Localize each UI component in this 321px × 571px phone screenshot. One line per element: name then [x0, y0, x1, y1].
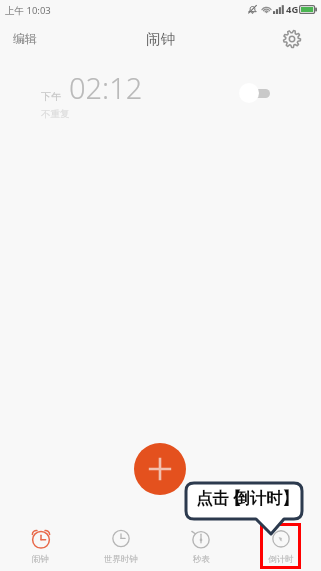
staticText: 下午 — [41, 90, 61, 103]
staticText: 世界时钟 — [104, 554, 138, 565]
button[interactable]: Alarm toggle — [239, 83, 270, 103]
staticText: 编辑 — [13, 31, 37, 46]
button[interactable]: 世界时钟 — [81, 521, 161, 571]
staticText: 】 — [282, 488, 299, 509]
staticText: 闹钟 — [32, 554, 49, 565]
staticText: 闹钟 — [146, 30, 175, 48]
button[interactable]: Settings — [272, 20, 321, 57]
staticText: 倒计时 — [268, 554, 294, 565]
button[interactable]: 闹钟 — [0, 521, 81, 571]
staticText: 倒计时 — [233, 488, 283, 509]
button[interactable]: 秒表 — [161, 521, 241, 571]
staticText: 秒表 — [193, 554, 210, 565]
button[interactable]: 下午 — [0, 57, 321, 131]
button[interactable]: 倒计时 — [241, 521, 321, 571]
staticText: 4G — [286, 3, 299, 16]
staticText: 02:12 — [69, 68, 143, 107]
button[interactable]: 点击【倒计时】 — [185, 482, 304, 536]
staticText: 上午 10:03 — [5, 4, 51, 17]
staticText: 【 — [225, 488, 242, 509]
button[interactable]: 编辑 — [0, 20, 50, 57]
staticText: 不重复 — [41, 108, 70, 120]
button[interactable]: Add alarm — [134, 443, 186, 495]
staticText: 点击 — [196, 488, 229, 509]
